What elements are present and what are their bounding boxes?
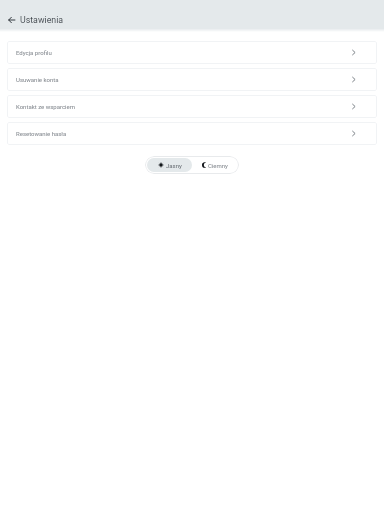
button[interactable]: Edycja profilu (7, 41, 377, 64)
staticText: Kontakt ze wsparciem (16, 103, 75, 110)
button[interactable]: Wstecz (4, 13, 18, 27)
staticText: Ustawienia (20, 15, 64, 25)
button[interactable]: Kontakt ze wsparciem (7, 95, 377, 118)
button[interactable]: Usuwanie konta (7, 68, 377, 91)
staticText: Edycja profilu (16, 49, 52, 56)
staticText: Usuwanie konta (16, 76, 59, 83)
button[interactable]: Jasny (147, 158, 192, 172)
button[interactable]: Resetowanie hasła (7, 122, 377, 145)
staticText: Resetowanie hasła (16, 130, 67, 137)
staticText: Jasny (166, 162, 182, 169)
button[interactable]: Ciemny (192, 158, 237, 172)
staticText: Ciemny (208, 162, 228, 169)
